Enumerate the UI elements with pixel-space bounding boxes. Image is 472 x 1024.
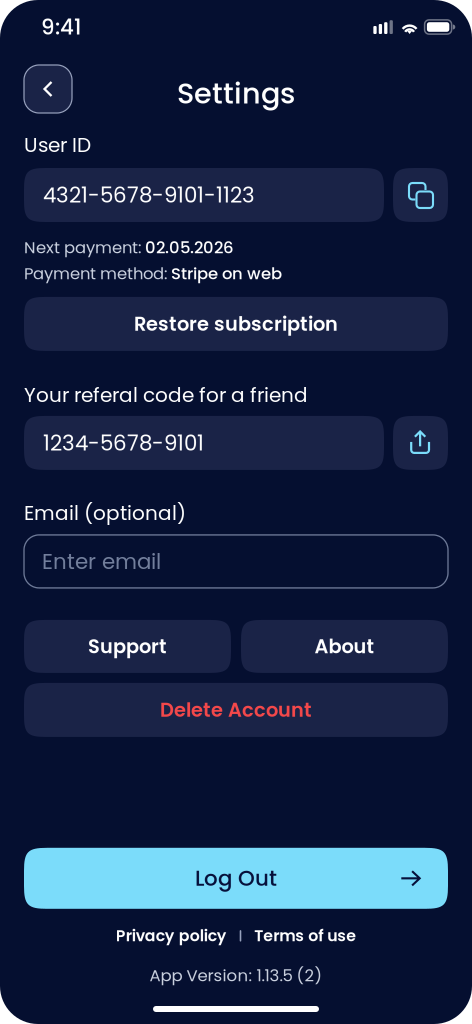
staticText: 9:41: [41, 12, 81, 42]
button[interactable]: Privacy policy: [116, 925, 227, 947]
staticText: Delete Account: [160, 696, 312, 723]
staticText: Privacy policy: [116, 925, 227, 947]
staticText: 1234-5678-9101: [43, 428, 204, 458]
staticText: 4321-5678-9101-1123: [43, 180, 255, 210]
staticText: Payment method:: [24, 262, 171, 285]
staticText: App Version: 1.13.5 (2): [149, 964, 322, 987]
button[interactable]: Enter email: [24, 535, 448, 588]
button[interactable]: Log Out: [24, 848, 448, 909]
button[interactable]: Copy user ID: [393, 168, 448, 222]
staticText: About: [314, 633, 374, 660]
button[interactable]: Back: [24, 65, 72, 113]
staticText: Enter email: [42, 546, 161, 576]
button[interactable]: Support: [24, 620, 231, 673]
button[interactable]: Restore subscription: [24, 297, 448, 351]
staticText: 02.05.2026: [145, 236, 234, 259]
button[interactable]: Terms of use: [254, 925, 356, 947]
staticText: Stripe on web: [171, 262, 282, 285]
staticText: Email (optional): [24, 499, 186, 527]
staticText: Terms of use: [254, 925, 356, 947]
staticText: Next payment:: [24, 236, 145, 259]
staticText: Settings: [177, 73, 295, 114]
staticText: Log Out: [195, 863, 277, 893]
button[interactable]: About: [241, 620, 448, 673]
staticText: User ID: [24, 131, 91, 159]
staticText: Restore subscription: [134, 310, 338, 337]
staticText: Support: [88, 633, 167, 660]
button[interactable]: Delete Account: [24, 683, 448, 737]
staticText: Your referal code for a friend: [24, 381, 308, 409]
button[interactable]: Share referral code: [393, 416, 448, 470]
